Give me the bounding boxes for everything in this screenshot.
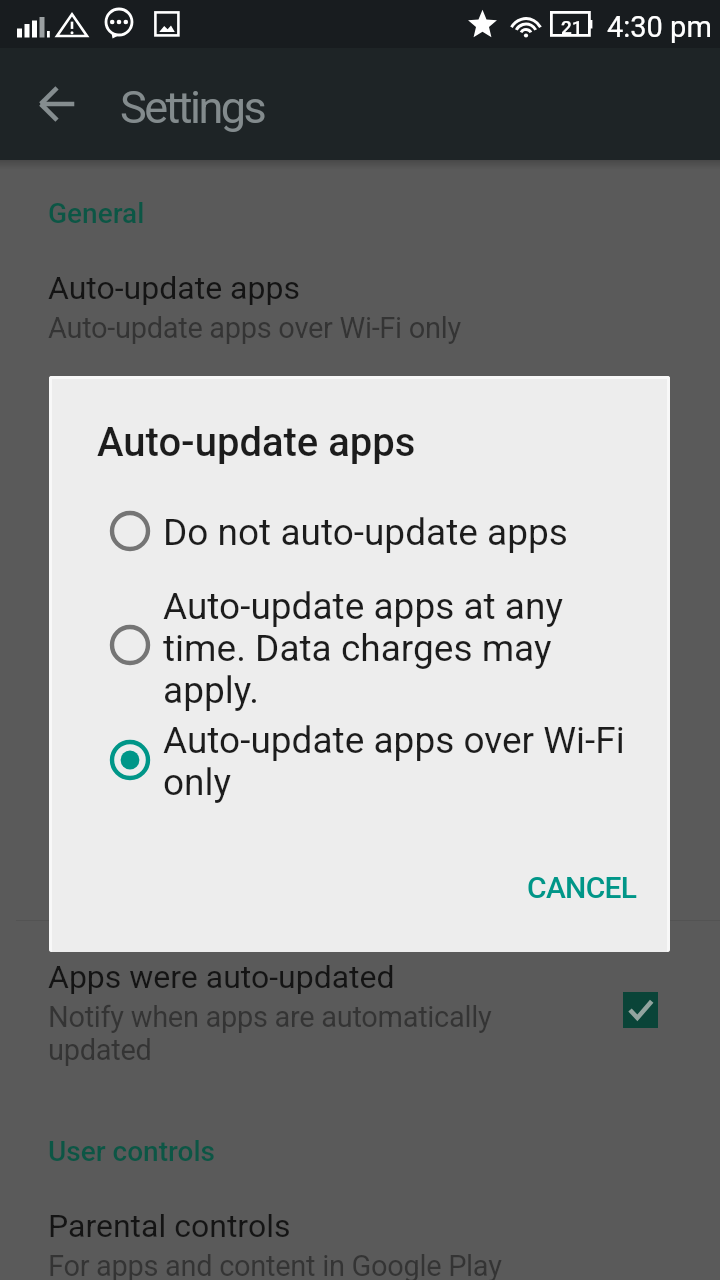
button[interactable] xyxy=(89,497,649,555)
staticText: CANCEL xyxy=(527,870,637,905)
staticText: For apps and content in Google Play xyxy=(48,1249,502,1280)
button[interactable]: Apps were auto-updated xyxy=(0,940,720,1092)
staticText: Notify when apps are automatically updat… xyxy=(48,1000,548,1067)
staticText: Do not auto-update apps xyxy=(163,511,633,554)
staticText: Settings xyxy=(120,81,265,134)
button[interactable]: Auto-update apps xyxy=(0,250,720,360)
staticText: Auto-update apps over Wi-Fi only xyxy=(163,719,633,804)
staticText: 4:30 pm xyxy=(607,10,712,44)
button[interactable] xyxy=(89,571,649,691)
staticText: Apps were auto-updated xyxy=(48,958,395,996)
button[interactable] xyxy=(89,705,649,763)
staticText: General xyxy=(48,197,145,230)
button[interactable]: Parental controls xyxy=(0,1188,720,1280)
staticText: Auto-update apps at any time. Data charg… xyxy=(163,585,633,712)
staticText: Auto-update apps over Wi-Fi only xyxy=(48,311,461,345)
staticText: Auto-update apps xyxy=(97,419,416,466)
staticText: User controls xyxy=(48,1135,215,1168)
button[interactable]: Notify when apps are auto-updated xyxy=(623,992,658,1028)
staticText: 21 xyxy=(561,16,583,38)
button[interactable]: CANCEL xyxy=(513,858,651,917)
staticText: Parental controls xyxy=(48,1207,291,1245)
staticText: Auto-update apps xyxy=(48,269,300,307)
button[interactable]: Back xyxy=(26,73,88,135)
